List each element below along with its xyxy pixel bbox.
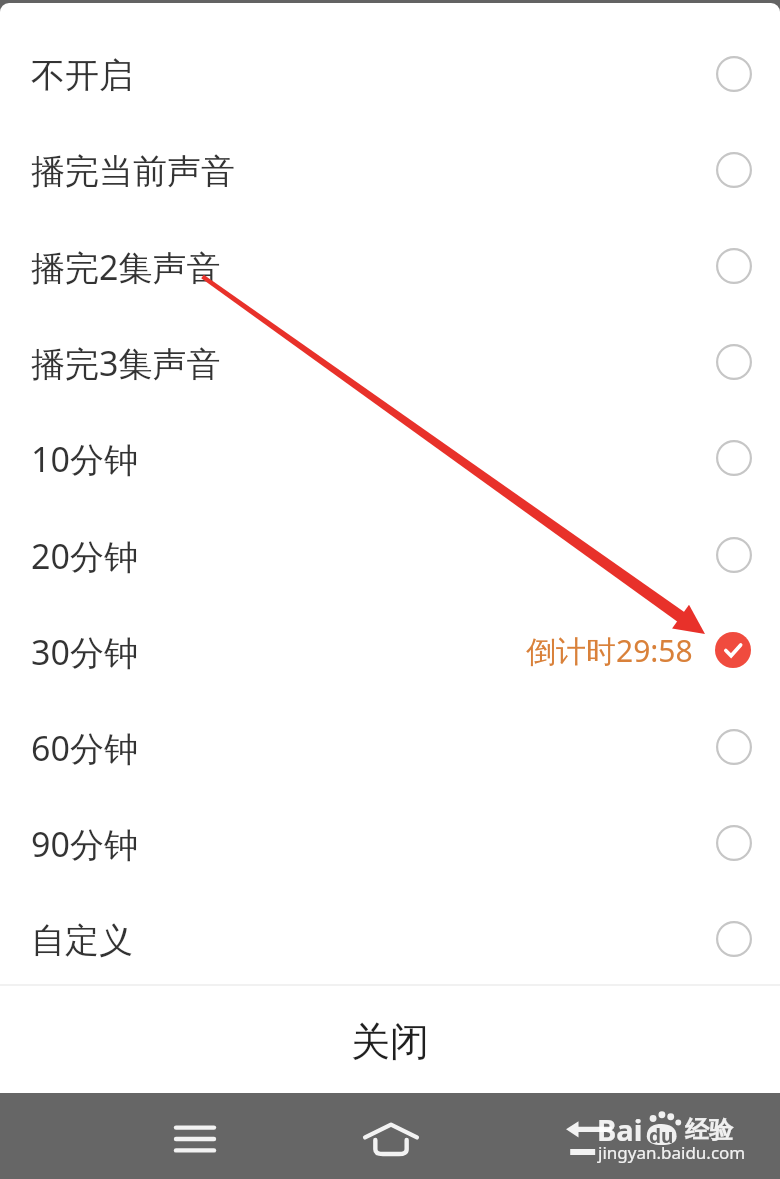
button[interactable]: 播完3集声音 (0, 313, 780, 409)
staticText: 10分钟 (31, 436, 138, 482)
staticText: 播完3集声音 (31, 340, 221, 386)
staticText: Bai (597, 1110, 643, 1149)
button[interactable]: Home (346, 1093, 436, 1179)
staticText: 播完2集声音 (31, 244, 221, 290)
button[interactable]: 90分钟 (0, 794, 780, 890)
button[interactable]: 关闭 (0, 985, 780, 1093)
staticText: 90分钟 (31, 821, 138, 867)
staticText: 播完当前声音 (31, 150, 235, 193)
button[interactable]: 20分钟 (0, 506, 780, 602)
button[interactable]: 10分钟 (0, 409, 780, 505)
button[interactable]: 播完当前声音 (0, 121, 780, 217)
button[interactable]: 不开启 (0, 25, 780, 121)
staticText: 经验 (685, 1115, 733, 1145)
staticText: 自定义 (31, 919, 133, 962)
staticText: 不开启 (31, 54, 133, 97)
button[interactable]: 播完2集声音 (0, 217, 780, 313)
button[interactable]: 自定义 (0, 890, 780, 986)
button[interactable]: 30分钟 (0, 602, 780, 698)
staticText: 60分钟 (31, 725, 138, 771)
staticText: jingyan.baidu.com (598, 1141, 746, 1164)
button[interactable]: Back (546, 1093, 636, 1179)
staticText: du (649, 1123, 674, 1149)
staticText: 20分钟 (31, 533, 138, 579)
staticText: 关闭 (351, 1017, 429, 1066)
button[interactable]: Recent apps (150, 1093, 240, 1179)
staticText: 30分钟 (31, 629, 138, 675)
staticText: 倒计时29:58 (526, 630, 693, 671)
button[interactable]: 60分钟 (0, 698, 780, 794)
